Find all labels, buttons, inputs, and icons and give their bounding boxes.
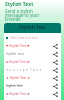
button[interactable]: ❤ Stylish Text ❤ xyxy=(4,42,61,50)
button[interactable]: S̶t̶y̶l̶i̶s̶h̶ T̶e̶x̶t̶ xyxy=(4,82,61,90)
staticText: Stylish Text xyxy=(19,24,47,31)
button[interactable]: Share xyxy=(52,51,59,58)
button[interactable]: Ｓｔｙｌｉｓｈ Ｔｅｘｔ xyxy=(4,66,61,74)
staticText: ✿ Stylish Text ✿ xyxy=(6,60,30,64)
button[interactable]: Ѕтуӏіѕһ тєхт xyxy=(4,50,61,58)
staticText: Enter your text here xyxy=(10,36,39,40)
button[interactable]: ★ Stylish Text ★ xyxy=(4,74,61,82)
staticText: Ｓｔｙｌｉｓｈ Ｔｅｘｔ xyxy=(6,68,42,72)
button[interactable]: Stylish Text xyxy=(4,23,61,33)
button[interactable]: Share xyxy=(52,59,59,66)
staticText: S̶t̶y̶l̶i̶s̶h̶ T̶e̶x̶t̶ xyxy=(6,84,23,88)
button[interactable]: Share xyxy=(52,83,59,90)
staticText: Send a stylish message to your Friends xyxy=(5,8,40,23)
button[interactable]: Share xyxy=(52,67,59,74)
staticText: ❀ Stylish Text ❀ xyxy=(6,92,30,96)
button[interactable]: ✿ Stylish Text ✿ xyxy=(4,58,61,66)
staticText: ❤ Stylish Text ❤ xyxy=(6,44,30,48)
staticText: Stylish Text xyxy=(5,1,34,8)
button[interactable]: Share xyxy=(52,91,59,98)
button[interactable]: ❀ Stylish Text ❀ xyxy=(4,90,61,98)
button[interactable]: Edit xyxy=(4,33,61,42)
button[interactable]: Share xyxy=(52,75,59,82)
staticText: ★ Stylish Text ★ xyxy=(6,76,30,80)
staticText: Ѕтуӏіѕһ тєхт xyxy=(6,52,25,56)
button[interactable]: Share xyxy=(52,43,59,50)
